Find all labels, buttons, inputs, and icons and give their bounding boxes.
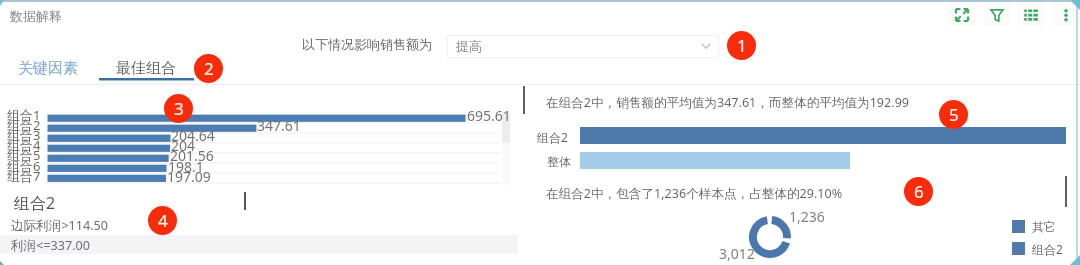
staticText: 边际利润>114.50	[11, 217, 108, 234]
staticText: 整体	[547, 154, 571, 169]
staticText: 组合6	[7, 157, 41, 175]
staticText: 组合2	[14, 192, 56, 214]
button[interactable]: 1	[727, 31, 756, 60]
staticText: 5	[949, 103, 959, 126]
staticText: 3	[174, 97, 184, 120]
button[interactable]: 6	[904, 177, 933, 206]
staticText: 2	[204, 57, 214, 80]
staticText: 利润<=337.00	[11, 237, 90, 254]
staticText: 组合2	[7, 116, 41, 134]
staticText: 组合4	[7, 136, 41, 154]
staticText: 组合2	[537, 129, 568, 145]
staticText: 数据解释	[10, 8, 62, 24]
staticText: 1	[737, 34, 747, 57]
staticText: 4	[158, 209, 168, 232]
button[interactable]: 关键因素	[12, 58, 86, 78]
staticText: 关键因素	[18, 59, 78, 78]
staticText: 198.1	[168, 157, 204, 176]
button[interactable]: Filter	[983, 3, 1011, 26]
button[interactable]: 最佳组合	[110, 58, 184, 78]
staticText: 197.09	[167, 167, 211, 186]
staticText: 1,236	[789, 207, 825, 226]
button[interactable]: More options	[1052, 3, 1080, 26]
staticText: 201.56	[170, 146, 214, 165]
staticText: 最佳组合	[116, 59, 176, 78]
staticText: 695.61	[467, 106, 511, 125]
staticText: 在组合2中，销售额的平均值为347.61，而整体的平均值为192.99	[546, 94, 910, 111]
button[interactable]: List view	[1017, 3, 1045, 26]
button[interactable]: 3	[164, 94, 193, 123]
staticText: 组合7	[7, 167, 41, 185]
staticText: 347.61	[257, 116, 301, 135]
staticText: 组合3	[7, 126, 41, 144]
staticText: 204.64	[171, 126, 215, 145]
button[interactable]: 4	[148, 206, 177, 235]
button[interactable]: Fullscreen	[948, 3, 976, 26]
staticText: 提高	[456, 38, 482, 54]
staticText: 组合1	[7, 106, 41, 124]
staticText: 在组合2中，包含了1,236个样本点，占整体的29.10%	[546, 185, 843, 202]
staticText: 3,012	[719, 244, 755, 263]
staticText: 组合2	[1032, 241, 1063, 257]
button[interactable]: 2	[194, 54, 223, 83]
staticText: 以下情况影响销售额为	[302, 36, 432, 52]
staticText: 其它	[1032, 219, 1056, 234]
staticText: 204	[171, 136, 196, 155]
staticText: 组合5	[7, 146, 41, 164]
button[interactable]: 提高	[447, 35, 719, 58]
button[interactable]: 5	[939, 100, 968, 129]
staticText: 6	[914, 180, 924, 203]
